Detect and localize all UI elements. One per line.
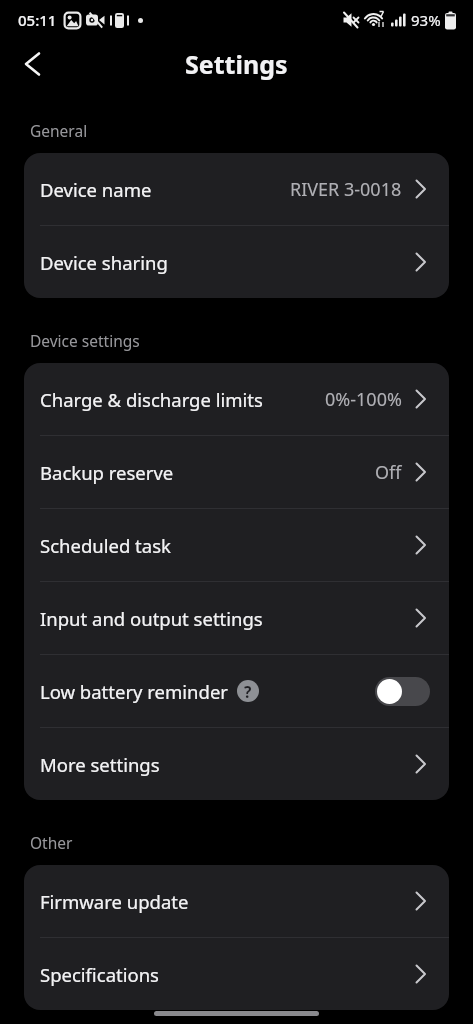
button[interactable]: Low battery reminder [24,655,449,727]
button[interactable]: Input and output settings [24,582,449,654]
button[interactable]: Firmware update [24,865,449,937]
button[interactable]: Device sharing [24,226,449,298]
staticText: Scheduled task [40,533,171,558]
button[interactable] [375,677,430,706]
staticText: 0%-100% [325,387,402,412]
staticText: 05:11 [18,10,57,30]
button[interactable]: Device name [24,153,449,225]
button[interactable] [12,44,52,84]
staticText: Specifications [40,962,159,987]
staticText: Settings [185,47,288,81]
staticText: RIVER 3-0018 [290,177,402,202]
button[interactable]: Backup reserve [24,436,449,508]
staticText: Backup reserve [40,460,174,485]
staticText: Firmware update [40,889,189,914]
staticText: General [30,120,88,141]
staticText: More settings [40,752,160,777]
button[interactable]: Charge & discharge limits [24,363,449,435]
staticText: Device sharing [40,250,168,275]
button[interactable]: Specifications [24,938,449,1010]
staticText: Low battery reminder [40,679,228,704]
button[interactable]: Scheduled task [24,509,449,581]
staticText: Device settings [30,330,140,351]
staticText: 93% [411,10,441,30]
staticText: Device name [40,177,152,202]
button[interactable]: More settings [24,728,449,800]
staticText: Input and output settings [40,606,263,631]
staticText: Off [375,460,402,485]
staticText: Other [30,832,73,853]
staticText: Charge & discharge limits [40,387,263,412]
staticText: ? [244,681,252,702]
